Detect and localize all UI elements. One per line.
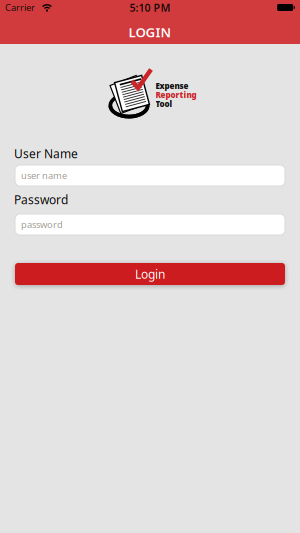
staticText: Password — [14, 191, 68, 207]
staticText: LOGIN — [128, 23, 171, 41]
secureTextField[interactable]: password — [21, 218, 285, 231]
staticText: Login — [135, 266, 165, 282]
staticText: Tool — [155, 99, 172, 109]
staticText: Expense — [155, 81, 188, 91]
button[interactable]: Login — [0, 263, 300, 285]
textField[interactable]: user name — [21, 169, 285, 182]
staticText: 5:10 PM — [129, 0, 170, 15]
staticText: User Name — [14, 145, 78, 161]
staticText: Reporting — [155, 90, 196, 100]
staticText: password — [21, 218, 63, 231]
staticText: user name — [21, 169, 67, 182]
staticText: Carrier — [5, 1, 35, 14]
